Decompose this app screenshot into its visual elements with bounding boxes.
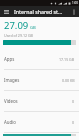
staticText: Videos xyxy=(4,98,18,104)
staticText: 1:00 xyxy=(72,1,78,5)
staticText: 0.00 KB xyxy=(62,78,75,83)
button[interactable]: Videos xyxy=(0,91,79,111)
staticText: GB xyxy=(30,25,36,31)
staticText: 0 xyxy=(72,120,75,125)
staticText: 27.09 xyxy=(4,19,29,32)
button[interactable]: Open navigation drawer xyxy=(3,8,10,15)
staticText: 0 xyxy=(72,99,75,104)
staticText: Audio xyxy=(4,119,17,125)
staticText: Used of 29.12 GB xyxy=(4,33,33,38)
button[interactable]: More options xyxy=(70,8,77,15)
staticText: Apps xyxy=(4,56,15,62)
staticText: Internal shared storage xyxy=(14,8,63,15)
staticText: Images xyxy=(4,77,20,83)
button[interactable]: Apps xyxy=(0,49,79,69)
button[interactable]: Audio xyxy=(0,112,79,132)
staticText: 17.15 GB xyxy=(59,57,75,62)
button[interactable]: Images xyxy=(0,70,79,90)
